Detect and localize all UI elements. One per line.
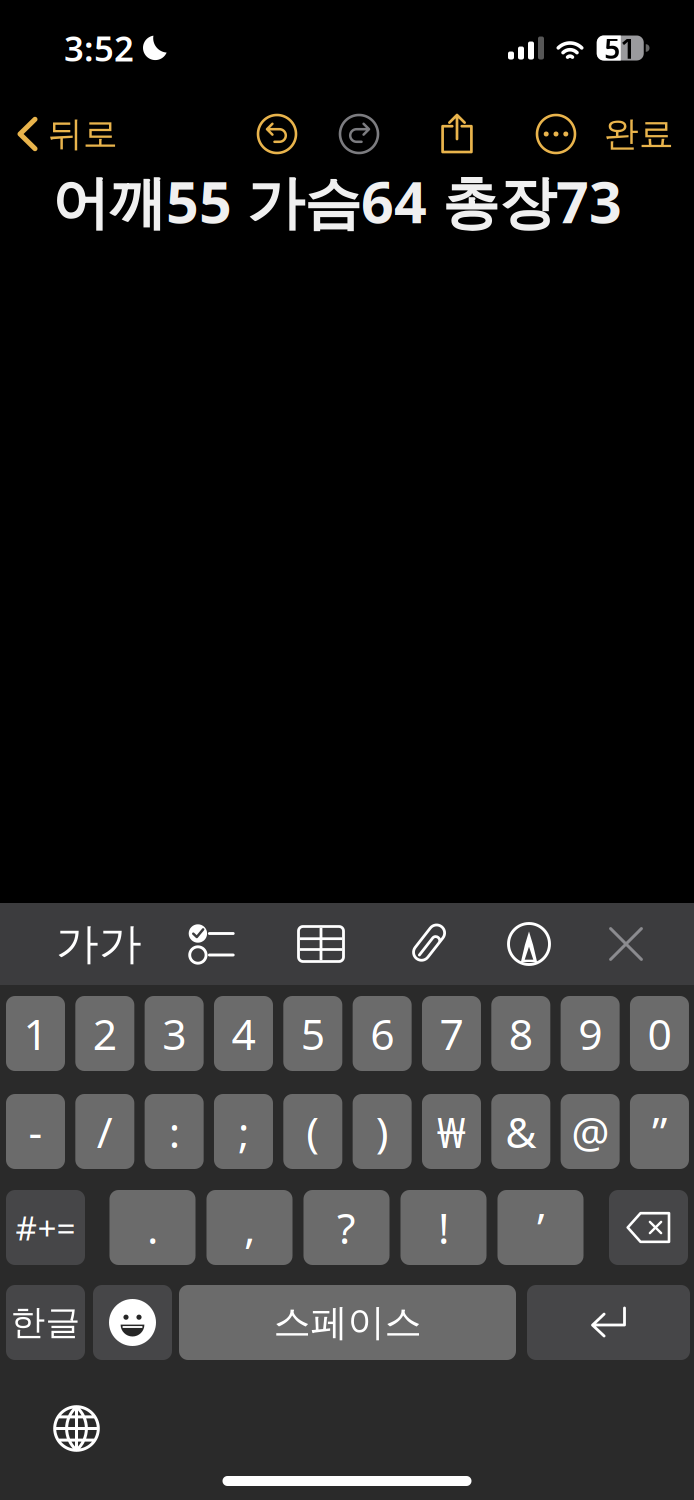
staticText: 스페이스 [273, 1300, 421, 1345]
button[interactable]: Attach file [385, 903, 471, 985]
button[interactable]: 2 [75, 996, 134, 1071]
staticText: ; [238, 1103, 249, 1160]
staticText: 6 [370, 1005, 394, 1062]
button[interactable]: ’ [497, 1190, 583, 1265]
button[interactable]: / [75, 1094, 134, 1169]
button[interactable]: ( [283, 1094, 342, 1169]
button[interactable]: 6 [353, 996, 412, 1071]
button[interactable]: 0 [630, 996, 689, 1071]
staticText: 1 [23, 1005, 47, 1062]
button[interactable]: Emoji [93, 1285, 172, 1360]
staticText: 5 [301, 1005, 325, 1062]
staticText: 2 [93, 1005, 117, 1062]
button[interactable]: : [145, 1094, 204, 1169]
staticText: ’ [537, 1199, 544, 1256]
button[interactable]: 8 [491, 996, 550, 1071]
staticText: - [28, 1103, 42, 1160]
staticText: / [97, 1103, 113, 1160]
staticText: 3:52 [64, 25, 134, 71]
button[interactable]: Return [527, 1285, 690, 1360]
button[interactable]: Redo [337, 112, 381, 156]
button[interactable]: #+= [6, 1190, 85, 1265]
staticText: 4 [231, 1005, 255, 1062]
button[interactable]: 1 [6, 996, 65, 1071]
staticText: 7 [439, 1005, 463, 1062]
button[interactable]: , [206, 1190, 292, 1265]
staticText: ! [438, 1199, 449, 1256]
staticText: ( [306, 1103, 319, 1160]
button[interactable]: More options [534, 112, 578, 156]
button[interactable]: ? [303, 1190, 389, 1265]
button[interactable]: Undo [255, 112, 299, 156]
button[interactable]: 스페이스 [179, 1285, 516, 1360]
staticText: . [147, 1199, 158, 1256]
button[interactable]: 4 [214, 996, 273, 1071]
staticText: 51 [604, 29, 636, 67]
button[interactable]: & [491, 1094, 550, 1169]
staticText: 완료 [604, 113, 674, 155]
staticText: 9 [578, 1005, 602, 1062]
button[interactable]: Checklist [168, 903, 254, 985]
staticText: ) [376, 1103, 389, 1160]
staticText: ” [652, 1103, 667, 1160]
button[interactable]: . [109, 1190, 195, 1265]
staticText: 가가 [56, 918, 142, 970]
button[interactable]: ₩ [422, 1094, 481, 1169]
button[interactable]: Share [433, 108, 481, 160]
button[interactable]: ) [353, 1094, 412, 1169]
button[interactable]: Markup [486, 903, 572, 985]
staticText: : [169, 1103, 180, 1160]
staticText: ? [337, 1199, 356, 1256]
staticText: 뒤로 [48, 113, 118, 155]
staticText: 8 [509, 1005, 533, 1062]
button[interactable]: Next keyboard [37, 1389, 116, 1468]
staticText: 3 [162, 1005, 186, 1062]
button[interactable]: ” [630, 1094, 689, 1169]
staticText: 어깨55 가슴64 총장73 [52, 163, 622, 239]
staticText: 한글 [10, 1301, 80, 1344]
staticText: 0 [647, 1005, 671, 1062]
staticText: , [244, 1199, 255, 1256]
staticText: & [505, 1103, 536, 1160]
button[interactable]: 3 [145, 996, 204, 1071]
button[interactable]: 완료 [597, 108, 681, 160]
button[interactable]: Table [278, 903, 364, 985]
button[interactable]: ! [400, 1190, 486, 1265]
button[interactable]: Delete [609, 1190, 688, 1265]
button[interactable]: - [6, 1094, 65, 1169]
button[interactable]: 9 [561, 996, 620, 1071]
button[interactable]: 7 [422, 996, 481, 1071]
button[interactable]: 5 [283, 996, 342, 1071]
staticText: @ [571, 1103, 609, 1160]
button[interactable]: ; [214, 1094, 273, 1169]
button[interactable]: Close toolbar [583, 903, 669, 985]
staticText: ₩ [437, 1103, 466, 1160]
button[interactable]: 뒤로 [2, 103, 132, 165]
staticText: #+= [15, 1205, 75, 1250]
button[interactable]: @ [561, 1094, 620, 1169]
button[interactable]: 한글 [6, 1285, 85, 1360]
button[interactable]: 가가 [56, 903, 142, 985]
